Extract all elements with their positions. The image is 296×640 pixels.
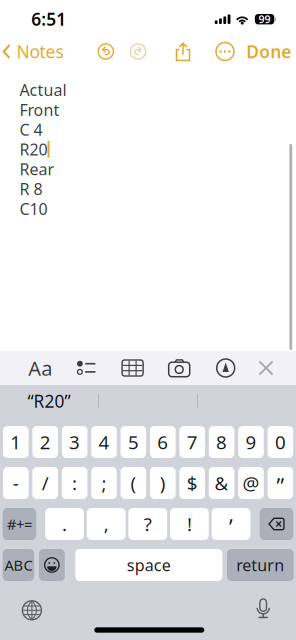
button[interactable]: Share: [170, 37, 195, 66]
staticText: 3: [69, 430, 80, 454]
staticText: -: [13, 471, 19, 495]
button[interactable]: Camera: [163, 353, 196, 383]
button[interactable]: 4: [91, 426, 117, 458]
button[interactable]: ): [150, 467, 176, 499]
button[interactable]: Markup: [211, 353, 241, 383]
staticText: ;: [101, 471, 106, 495]
button[interactable]: Undo: [92, 38, 119, 65]
staticText: R20: [19, 139, 47, 160]
staticText: 99: [259, 12, 271, 26]
button[interactable]: Done: [240, 33, 296, 70]
staticText: .: [62, 512, 67, 536]
button[interactable]: 3: [62, 426, 87, 458]
button[interactable]: Checklist: [71, 354, 102, 381]
button[interactable]: Delete: [260, 508, 293, 540]
staticText: 2: [40, 430, 51, 454]
staticText: @: [242, 471, 259, 495]
staticText: C10: [19, 198, 47, 219]
staticText: ABC: [4, 555, 32, 575]
button[interactable]: :: [62, 467, 87, 499]
staticText: !: [187, 512, 192, 536]
staticText: return: [236, 554, 284, 576]
button[interactable]: Format: [22, 349, 58, 387]
button[interactable]: return: [227, 549, 294, 581]
staticText: 6:51: [31, 7, 66, 30]
staticText: Notes: [16, 40, 63, 63]
button[interactable]: &: [209, 467, 234, 499]
staticText: 8: [216, 430, 227, 454]
button[interactable]: ;: [91, 467, 117, 499]
staticText: 9: [245, 430, 256, 454]
button[interactable]: 9: [238, 426, 264, 458]
button[interactable]: Next keyboard: [17, 596, 46, 625]
staticText: ,: [104, 512, 109, 536]
button[interactable]: “R20”: [0, 385, 98, 417]
button[interactable]: space: [75, 549, 222, 581]
button[interactable]: 6: [150, 426, 176, 458]
staticText: 7: [187, 430, 198, 454]
button[interactable]: /: [32, 467, 58, 499]
staticText: /: [42, 471, 49, 495]
staticText: $: [187, 471, 198, 495]
button[interactable]: !: [170, 508, 209, 540]
button[interactable]: ’: [212, 508, 250, 540]
button[interactable]: 1: [3, 426, 29, 458]
button[interactable]: Table: [116, 354, 149, 382]
staticText: 4: [98, 430, 109, 454]
button[interactable]: Emoji: [39, 549, 65, 581]
button[interactable]: (: [121, 467, 146, 499]
button[interactable]: @: [238, 467, 264, 499]
staticText: C 4: [19, 119, 42, 140]
button[interactable]: Redo: [124, 38, 151, 65]
button[interactable]: .: [45, 508, 84, 540]
button[interactable]: 8: [209, 426, 234, 458]
staticText: :: [72, 471, 77, 495]
staticText: Rear: [19, 158, 54, 180]
button[interactable]: Hide keyboard: [252, 354, 279, 381]
button[interactable]: 5: [121, 426, 146, 458]
staticText: R 8: [19, 178, 42, 199]
button[interactable]: 0: [268, 426, 293, 458]
staticText: ”: [276, 472, 284, 500]
button[interactable]: ABC: [3, 549, 34, 581]
button[interactable]: ”: [268, 467, 293, 499]
staticText: (: [130, 471, 136, 495]
button[interactable]: 2: [32, 426, 58, 458]
staticText: Actual: [19, 79, 66, 100]
staticText: Aa: [28, 355, 52, 381]
button[interactable]: ,: [87, 508, 126, 540]
staticText: 0: [275, 430, 286, 454]
staticText: ?: [144, 512, 152, 536]
staticText: Front: [19, 99, 59, 120]
staticText: 1: [10, 430, 21, 454]
button[interactable]: $: [179, 467, 205, 499]
button[interactable]: #+=: [3, 508, 36, 540]
button[interactable]: 7: [179, 426, 205, 458]
staticText: &: [215, 471, 229, 495]
button[interactable]: More: [211, 37, 239, 65]
staticText: space: [127, 554, 171, 576]
staticText: ): [160, 471, 166, 495]
staticText: ’: [229, 513, 233, 541]
button[interactable]: ?: [128, 508, 167, 540]
button[interactable]: Notes: [0, 33, 69, 70]
button[interactable]: Dictate: [251, 593, 275, 624]
staticText: #+=: [7, 514, 32, 534]
button[interactable]: -: [3, 467, 29, 499]
staticText: 5: [128, 430, 139, 454]
staticText: Done: [246, 40, 291, 63]
staticText: “R20”: [27, 389, 70, 412]
staticText: 6: [157, 430, 168, 454]
